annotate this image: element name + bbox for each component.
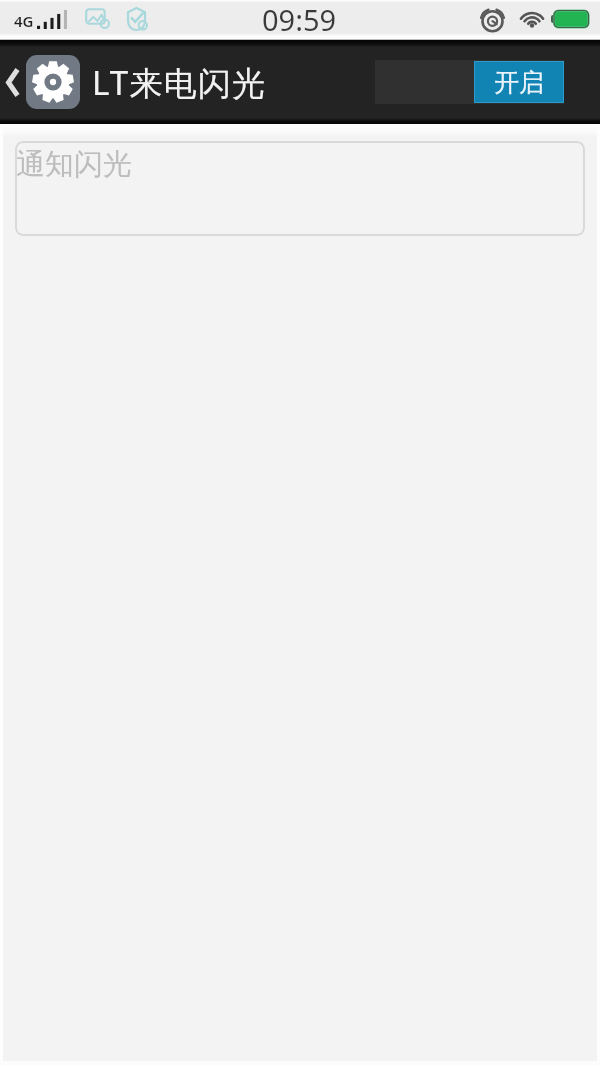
button[interactable]: Back bbox=[0, 54, 26, 110]
button[interactable]: Settings bbox=[26, 55, 80, 109]
staticText: 4G bbox=[14, 11, 34, 31]
button[interactable]: 通知闪光 bbox=[15, 141, 585, 236]
button[interactable]: Toggle on bbox=[375, 60, 564, 104]
staticText: LT来电闪光 bbox=[92, 60, 267, 105]
staticText: 09:59 bbox=[262, 0, 337, 39]
staticText: 通知闪光 bbox=[16, 146, 132, 183]
staticText: 开启 bbox=[494, 67, 544, 98]
